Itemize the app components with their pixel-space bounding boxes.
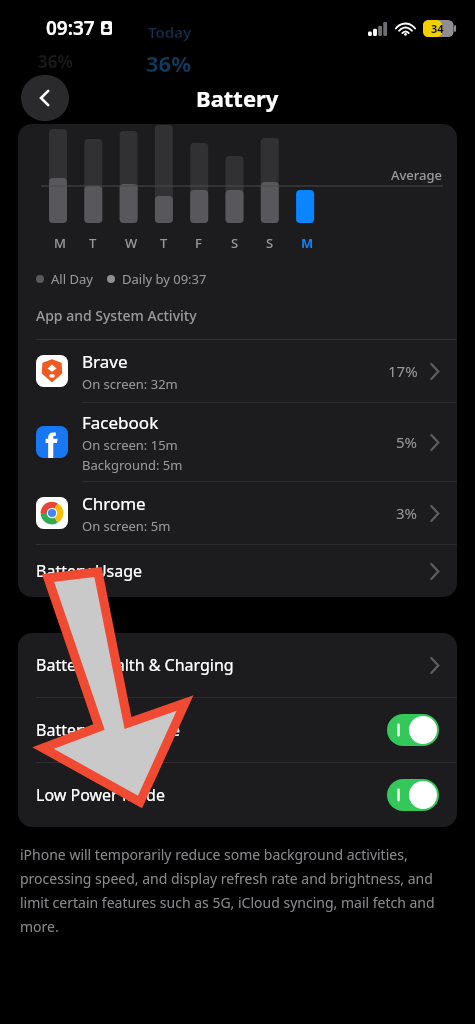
staticText: T (160, 234, 168, 252)
staticText: Today (148, 22, 192, 42)
staticText: Battery (196, 83, 279, 113)
staticText: S (266, 234, 274, 252)
staticText: Background: 5m (82, 456, 183, 474)
button[interactable]: Low Power Mode (387, 779, 439, 811)
staticText: On screen: 15m (82, 436, 178, 454)
staticText: 34 (431, 21, 444, 36)
staticText: 09:37 (46, 15, 95, 41)
staticText: M (54, 234, 66, 252)
staticText: App and System Activity (36, 306, 197, 325)
button[interactable]: Low Power Mode (18, 763, 457, 827)
staticText: 36% (38, 50, 73, 73)
button[interactable]: Battery Percentage (387, 714, 439, 746)
button[interactable]: Battery Health & Charging (18, 633, 457, 697)
staticText: Battery Health & Charging (36, 654, 234, 676)
staticText: On screen: 5m (82, 517, 171, 535)
staticText: 17% (388, 361, 418, 381)
staticText: 3% (396, 503, 418, 523)
staticText: 36% (146, 48, 192, 78)
button[interactable]: Battery Percentage (18, 698, 457, 762)
staticText: M (301, 234, 314, 252)
staticText: Facebook (82, 411, 159, 434)
staticText: Chrome (82, 492, 146, 515)
staticText: Low Power Mode (36, 784, 165, 806)
staticText: All Day (51, 270, 93, 288)
staticText: 5% (396, 432, 418, 452)
staticText: Battery Percentage (36, 719, 181, 741)
staticText: Brave (82, 350, 128, 373)
staticText: Daily by 09:37 (122, 270, 207, 288)
staticText: iPhone will temporarily reduce some back… (20, 845, 455, 936)
staticText: F (195, 234, 202, 252)
staticText: S (231, 234, 239, 252)
staticText: Average (391, 166, 443, 184)
staticText: Battery Usage (36, 560, 143, 582)
button[interactable]: Brave (18, 340, 457, 402)
button[interactable]: Facebook (18, 403, 457, 481)
staticText: W (125, 234, 138, 252)
button[interactable]: Chrome (18, 482, 457, 544)
button[interactable]: Battery Usage (18, 545, 457, 597)
button[interactable]: Back (21, 75, 69, 121)
staticText: On screen: 32m (82, 375, 178, 393)
staticText: T (89, 234, 97, 252)
